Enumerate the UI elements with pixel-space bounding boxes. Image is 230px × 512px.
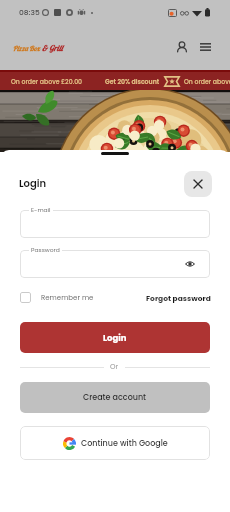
button[interactable]: Continue with Google xyxy=(20,426,210,460)
staticText: Pizza Box xyxy=(13,44,42,53)
staticText: Login xyxy=(19,176,47,190)
staticText: 08:35 xyxy=(19,7,40,17)
staticText: Get 20% discount xyxy=(105,77,160,86)
staticText: Or xyxy=(110,362,119,372)
button[interactable]: Login xyxy=(20,322,210,353)
button[interactable]: Close xyxy=(184,171,212,197)
staticText: On order above £20.00 xyxy=(11,77,83,86)
button[interactable]: Account xyxy=(173,38,191,56)
button[interactable]: Remember me xyxy=(20,292,94,303)
staticText: & Grill xyxy=(42,43,63,53)
staticText: Remember me xyxy=(41,293,94,303)
staticText: On order above £20.00 xyxy=(184,77,230,86)
button[interactable]: Forgot password xyxy=(146,293,211,303)
staticText: Create account xyxy=(83,392,147,403)
button[interactable]: Create account xyxy=(20,382,210,413)
button[interactable]: Menu xyxy=(196,38,214,56)
button[interactable] xyxy=(20,250,210,278)
staticText: Login xyxy=(103,332,127,344)
staticText: Continue with Google xyxy=(81,438,168,449)
staticText: Password xyxy=(31,246,60,254)
button[interactable] xyxy=(20,210,210,238)
staticText: E-mail xyxy=(31,206,51,214)
